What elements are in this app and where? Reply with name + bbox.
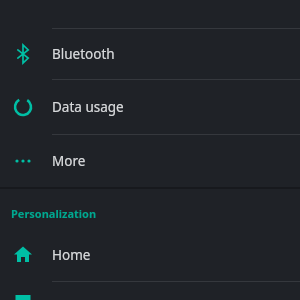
button[interactable]: Data usage bbox=[0, 80, 300, 134]
button[interactable]: Home bbox=[0, 228, 300, 281]
staticText: More bbox=[52, 152, 86, 170]
button[interactable]: More bbox=[0, 135, 300, 187]
staticText: Personalization bbox=[11, 206, 97, 221]
staticText: Bluetooth bbox=[52, 45, 115, 63]
button[interactable]: Bluetooth bbox=[0, 29, 300, 79]
staticText: Home bbox=[52, 246, 91, 264]
button[interactable]: Display bbox=[0, 282, 300, 300]
staticText: Data usage bbox=[52, 98, 124, 116]
